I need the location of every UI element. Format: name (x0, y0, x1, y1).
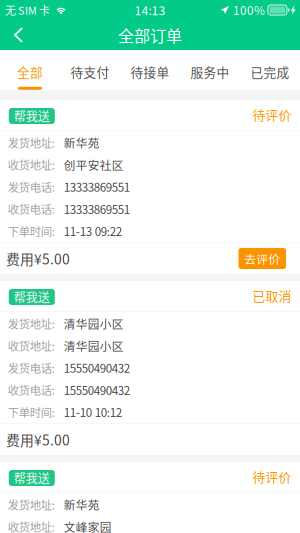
staticText: 收货地址 (8, 337, 52, 354)
staticText: 去评价 (244, 250, 280, 267)
staticText: 费用¥5.00 (6, 248, 70, 269)
staticText: 发货电话 (8, 359, 52, 376)
staticText: 创平安社区 (64, 156, 124, 173)
button[interactable]: 已完成 (240, 50, 300, 90)
staticText: : (52, 518, 55, 533)
staticText: 待评价 (252, 467, 291, 486)
staticText: : (52, 156, 55, 173)
staticText: 11-10 10:12 (64, 404, 122, 420)
staticText: : (52, 359, 55, 376)
staticText: 待支付 (70, 62, 109, 81)
staticText: 11-13 09:22 (64, 223, 122, 239)
staticText: : (52, 315, 55, 332)
button[interactable]: 待支付 (60, 50, 120, 90)
staticText: 待评价 (252, 105, 291, 124)
staticText: 13333869551 (64, 200, 130, 217)
staticText: 全部订单 (118, 23, 182, 47)
staticText: 下单时间 (8, 404, 52, 420)
staticText: 新华苑 (64, 134, 100, 151)
staticText: : (52, 337, 55, 354)
staticText: 待接单 (130, 62, 169, 81)
staticText: 15550490432 (64, 381, 130, 398)
staticText: 服务中 (190, 62, 229, 81)
staticText: 14:13 (134, 1, 165, 19)
staticText: 已取消 (252, 286, 291, 305)
staticText: 发货地址 (8, 134, 52, 151)
staticText: 清华园小区 (64, 337, 124, 354)
staticText: 收货地址 (8, 156, 52, 173)
staticText: 文峰家园 (64, 518, 112, 533)
staticText: 新华苑 (64, 496, 100, 513)
button[interactable]: 返回 (3, 20, 34, 50)
staticText: 发货地址 (8, 496, 52, 513)
staticText: : (52, 223, 55, 239)
staticText: : (52, 134, 55, 151)
button[interactable]: 服务中 (180, 50, 240, 90)
staticText: 发货地址 (8, 315, 52, 332)
staticText: 下单时间 (8, 223, 52, 239)
staticText: 无 SIM 卡 (5, 2, 50, 18)
staticText: 费用¥5.00 (6, 429, 70, 450)
staticText: 15550490432 (64, 359, 130, 376)
staticText: : (52, 382, 55, 398)
button[interactable]: 待接单 (120, 50, 180, 90)
staticText: : (52, 178, 55, 195)
staticText: 帮我送 (14, 107, 50, 125)
staticText: 清华园小区 (64, 315, 124, 332)
button[interactable]: 全部 (0, 50, 60, 90)
staticText: 100% (233, 1, 265, 18)
staticText: : (52, 496, 55, 513)
staticText: 已完成 (250, 62, 289, 81)
staticText: : (52, 404, 55, 420)
staticText: 帮我送 (14, 288, 50, 306)
staticText: 收货电话 (8, 382, 52, 398)
staticText: 全部 (17, 62, 43, 81)
staticText: 发货电话 (8, 178, 52, 195)
staticText: 13333869551 (64, 178, 130, 195)
staticText: 帮我送 (14, 469, 50, 487)
staticText: 收货地址 (8, 518, 52, 533)
button[interactable]: 去评价 (238, 248, 286, 269)
staticText: 收货电话 (8, 201, 52, 217)
staticText: : (52, 201, 55, 217)
